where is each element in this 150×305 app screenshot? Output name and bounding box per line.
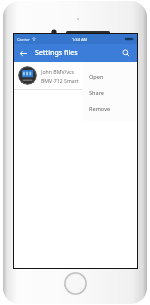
staticText: John BMV/vcs bbox=[41, 68, 75, 75]
staticText: Settings files bbox=[35, 48, 78, 58]
button[interactable]: Remove bbox=[82, 101, 137, 117]
staticText: Open bbox=[89, 73, 104, 81]
button[interactable]: Search bbox=[117, 44, 135, 62]
button[interactable]: John BMV/vcs bbox=[14, 62, 137, 89]
staticText: 1:34 AM bbox=[72, 37, 88, 42]
staticText: Carrier bbox=[17, 37, 31, 42]
button[interactable]: Share bbox=[82, 85, 137, 101]
staticText: Share bbox=[89, 89, 105, 97]
button[interactable]: Open bbox=[82, 69, 137, 85]
button[interactable]: Back bbox=[14, 44, 32, 62]
staticText: BMV-712 Smart bbox=[41, 77, 79, 84]
staticText: Remove bbox=[89, 105, 111, 113]
